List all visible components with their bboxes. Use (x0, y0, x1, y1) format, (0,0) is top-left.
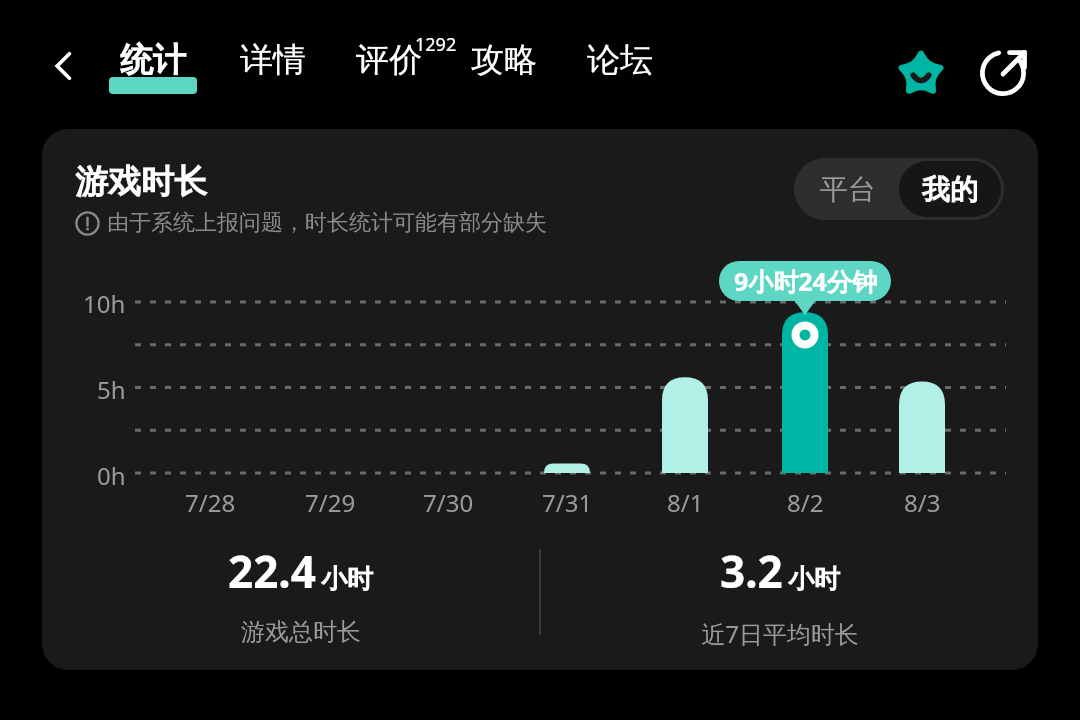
button[interactable]: 22.4 (62, 541, 539, 647)
button[interactable]: 平台 (797, 161, 899, 217)
button[interactable]: 3.2 (541, 541, 1018, 650)
button[interactable]: Favorite (888, 40, 954, 106)
staticText: 0h (97, 459, 126, 492)
staticText: 近7日平均时长 (701, 617, 859, 650)
staticText: 平台 (820, 172, 876, 207)
staticText: 8/2 (787, 486, 824, 519)
button[interactable]: 详情 (227, 30, 319, 100)
staticText: 游戏总时长 (241, 617, 361, 647)
staticText: 9小时24分钟 (734, 264, 877, 298)
staticText: 游戏时长 (75, 161, 207, 203)
staticText: 7/31 (542, 486, 593, 519)
staticText: 8/3 (904, 486, 941, 519)
button[interactable]: 我的 (899, 161, 1001, 217)
staticText: 22.4 (228, 541, 316, 601)
staticText: 7/30 (423, 486, 474, 519)
staticText: 小时 (788, 563, 840, 596)
staticText: 3.2 (720, 541, 783, 601)
staticText: 小时 (321, 563, 373, 596)
staticText: 由于系统上报问题，时长统计可能有部分缺失 (107, 209, 547, 237)
button[interactable]: 评价 (343, 30, 435, 100)
button[interactable]: 论坛 (574, 30, 666, 100)
staticText: 评价 (356, 39, 422, 81)
button[interactable]: Back (38, 40, 90, 92)
staticText: 7/28 (185, 486, 236, 519)
staticText: 论坛 (587, 39, 653, 81)
staticText: 1292 (415, 32, 457, 57)
staticText: 攻略 (471, 39, 537, 81)
staticText: 8/1 (667, 486, 704, 519)
button[interactable]: 统计 (107, 30, 199, 100)
button[interactable]: 攻略 (458, 30, 550, 100)
staticText: 5h (97, 373, 126, 406)
staticText: 统计 (120, 39, 186, 81)
button[interactable]: Share (968, 38, 1038, 108)
staticText: 7/29 (305, 486, 356, 519)
staticText: 10h (83, 287, 126, 320)
staticText: 详情 (240, 39, 306, 81)
staticText: 我的 (922, 172, 978, 207)
